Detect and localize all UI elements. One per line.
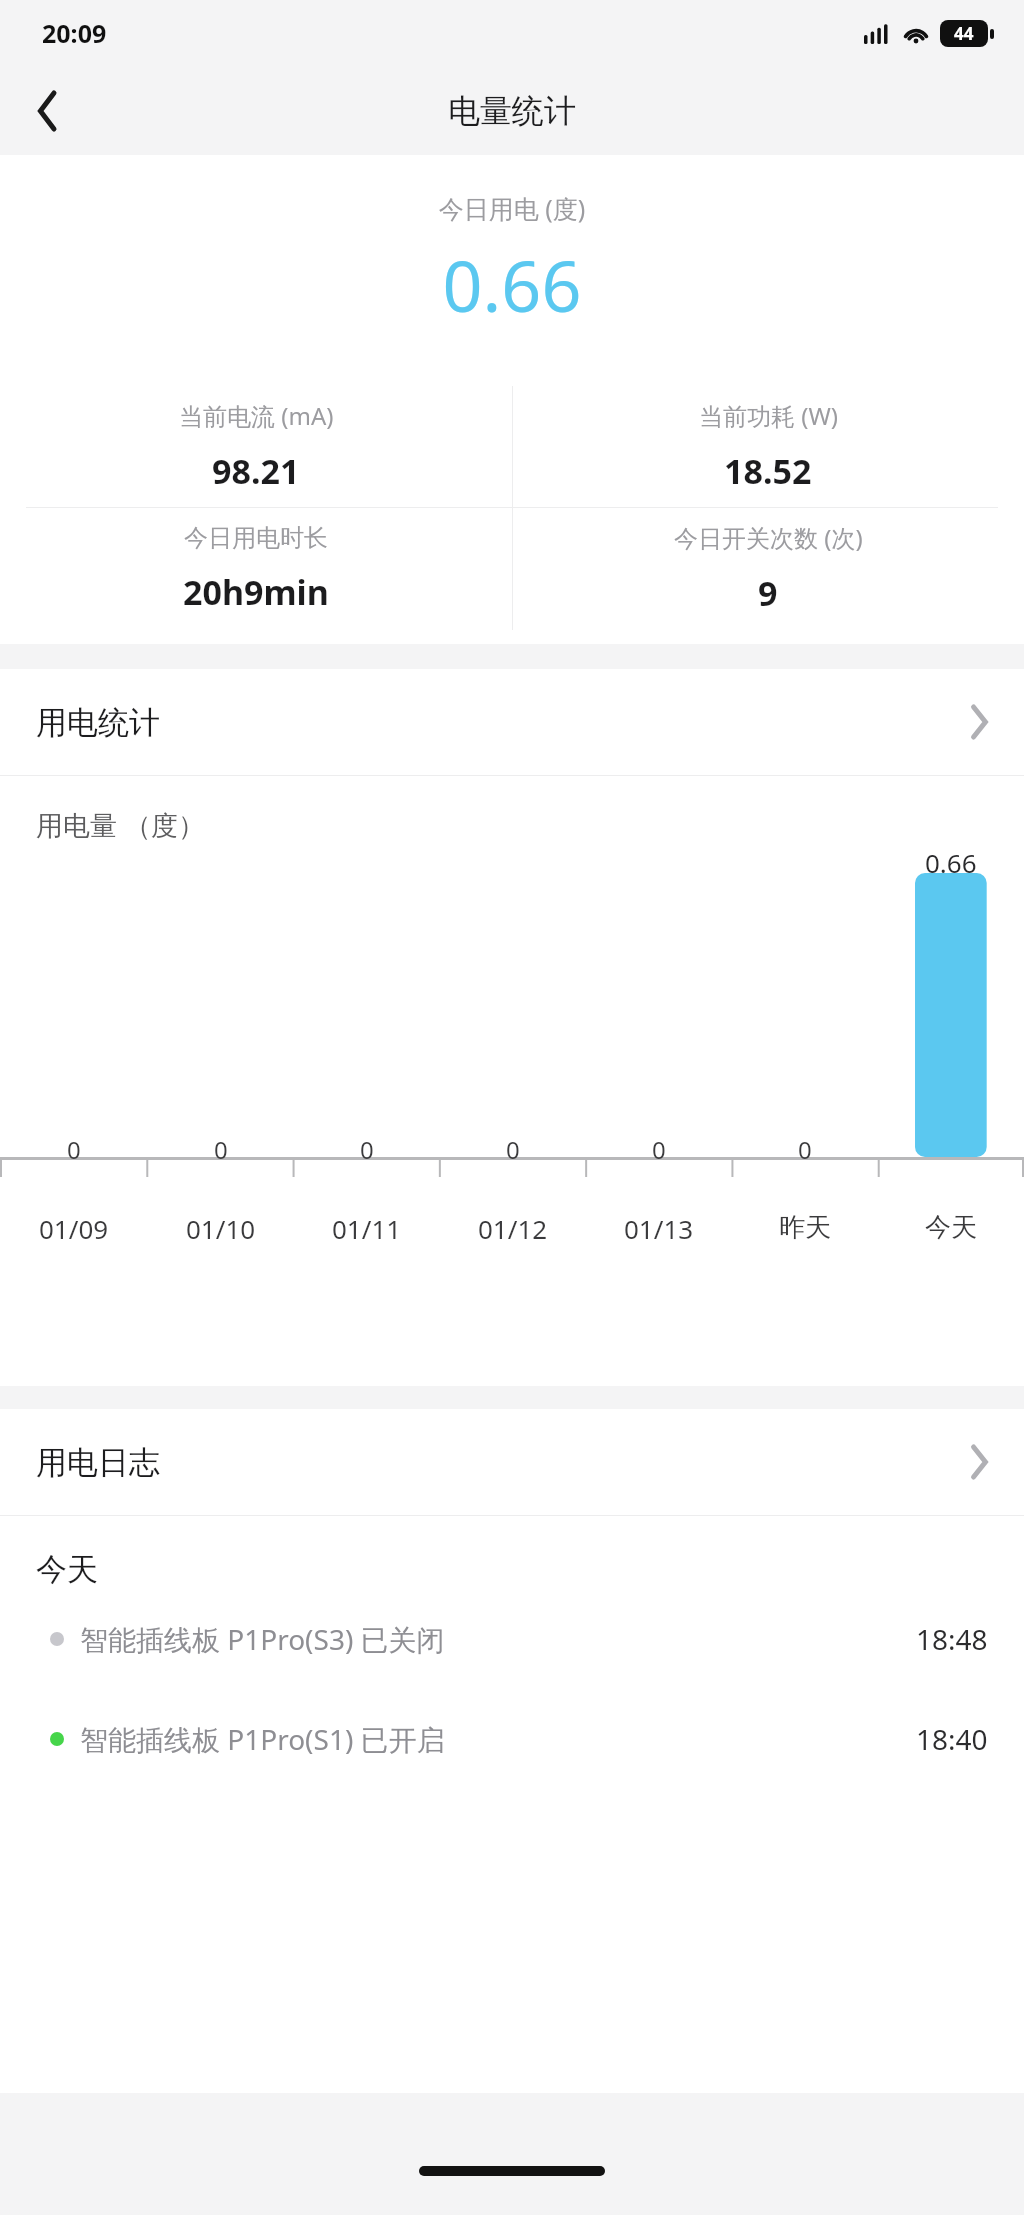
staticText: 昨天 [779, 1211, 831, 1244]
staticText: 0.66 [925, 845, 977, 880]
staticText: 0 [67, 1133, 81, 1166]
staticText: 0 [506, 1133, 520, 1166]
staticText: 今日用电 (度) [0, 191, 1024, 225]
staticText: 用电日志 [36, 1443, 160, 1482]
button[interactable]: 智能插线板 P1Pro(S1) 已开启 [0, 1689, 1024, 1789]
staticText: 01/12 [478, 1211, 548, 1246]
staticText: 今日开关次数 (次) [674, 521, 863, 554]
staticText: 智能插线板 P1Pro(S1) 已开启 [80, 1720, 445, 1758]
staticText: 当前功耗 (W) [699, 399, 838, 432]
staticText: 0 [214, 1133, 228, 1166]
staticText: 电量统计 [448, 91, 576, 131]
staticText: 今天 [925, 1211, 977, 1244]
staticText: 20:09 [42, 16, 107, 50]
button[interactable]: 用电统计 [0, 669, 1024, 775]
staticText: 智能插线板 P1Pro(S3) 已关闭 [80, 1620, 445, 1658]
staticText: 9 [758, 570, 778, 616]
staticText: 18:48 [916, 1620, 988, 1658]
staticText: 01/13 [624, 1211, 694, 1246]
staticText: 用电统计 [36, 703, 160, 742]
button[interactable]: Back [16, 79, 80, 143]
staticText: 01/11 [332, 1211, 402, 1246]
staticText: 01/10 [186, 1211, 256, 1246]
staticText: 18.52 [724, 448, 812, 494]
staticText: 0 [798, 1133, 812, 1166]
staticText: 01/09 [39, 1211, 109, 1246]
staticText: 44 [954, 22, 974, 45]
staticText: 0 [360, 1133, 374, 1166]
button[interactable]: 用电日志 [0, 1409, 1024, 1515]
staticText: 98.21 [212, 448, 300, 494]
staticText: 当前电流 (mA) [179, 399, 334, 432]
button[interactable]: 智能插线板 P1Pro(S3) 已关闭 [0, 1589, 1024, 1689]
staticText: 20h9min [183, 569, 329, 615]
staticText: 今日用电时长 [184, 523, 328, 553]
staticText: 0.66 [0, 237, 1024, 332]
staticText: 今天 [36, 1550, 98, 1589]
staticText: 用电量 （度） [36, 806, 206, 843]
staticText: 18:40 [916, 1720, 988, 1758]
staticText: 0 [652, 1133, 666, 1166]
